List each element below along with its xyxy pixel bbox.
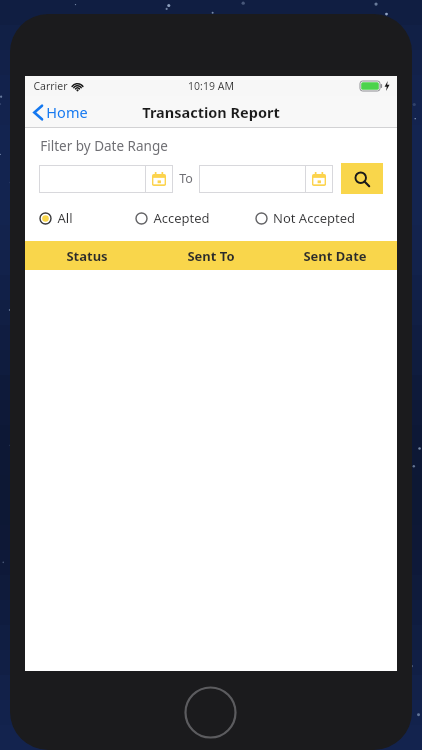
staticText: Not Accepted: [273, 209, 355, 227]
staticText: Carrier: [33, 79, 68, 93]
button[interactable]: Accepted: [135, 206, 255, 230]
button[interactable]: Not Accepted: [255, 206, 385, 230]
button[interactable]: Sent Date: [273, 247, 397, 265]
button[interactable]: Pick date: [39, 165, 173, 193]
staticText: Transaction Report: [142, 102, 280, 122]
staticText: Sent Date: [303, 247, 367, 265]
button[interactable]: Sent To: [149, 247, 273, 265]
staticText: Accepted: [153, 209, 210, 227]
staticText: Home: [46, 102, 88, 122]
button[interactable]: Status: [25, 247, 149, 265]
button[interactable]: Search: [341, 163, 383, 194]
staticText: All: [57, 209, 73, 227]
button[interactable]: Home: [25, 98, 96, 126]
staticText: To: [179, 170, 193, 187]
staticText: Status: [66, 247, 108, 265]
other: Home button: [184, 686, 237, 739]
staticText: Filter by Date Range: [40, 137, 168, 155]
other: Pick date: [145, 166, 173, 192]
button[interactable]: Pick date: [199, 165, 333, 193]
staticText: 10:19 AM: [188, 79, 234, 93]
button[interactable]: All: [39, 206, 135, 230]
staticText: Sent To: [187, 247, 235, 265]
other: Pick date: [305, 166, 333, 192]
